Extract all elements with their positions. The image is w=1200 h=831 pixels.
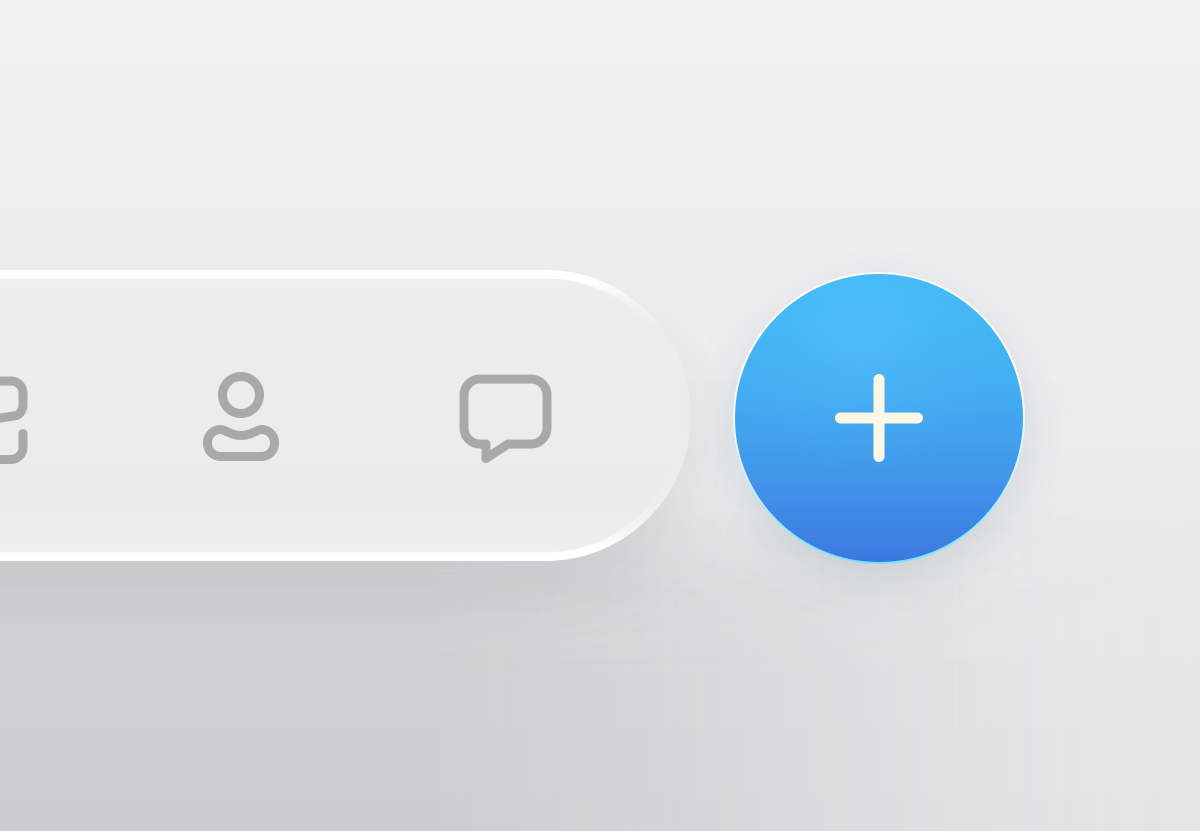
button[interactable]: Messages bbox=[400, 336, 610, 486]
button[interactable]: Library bbox=[0, 339, 95, 489]
button[interactable] bbox=[0, 270, 691, 561]
button[interactable]: Add bbox=[729, 268, 1029, 568]
button[interactable]: Profile bbox=[136, 339, 346, 489]
